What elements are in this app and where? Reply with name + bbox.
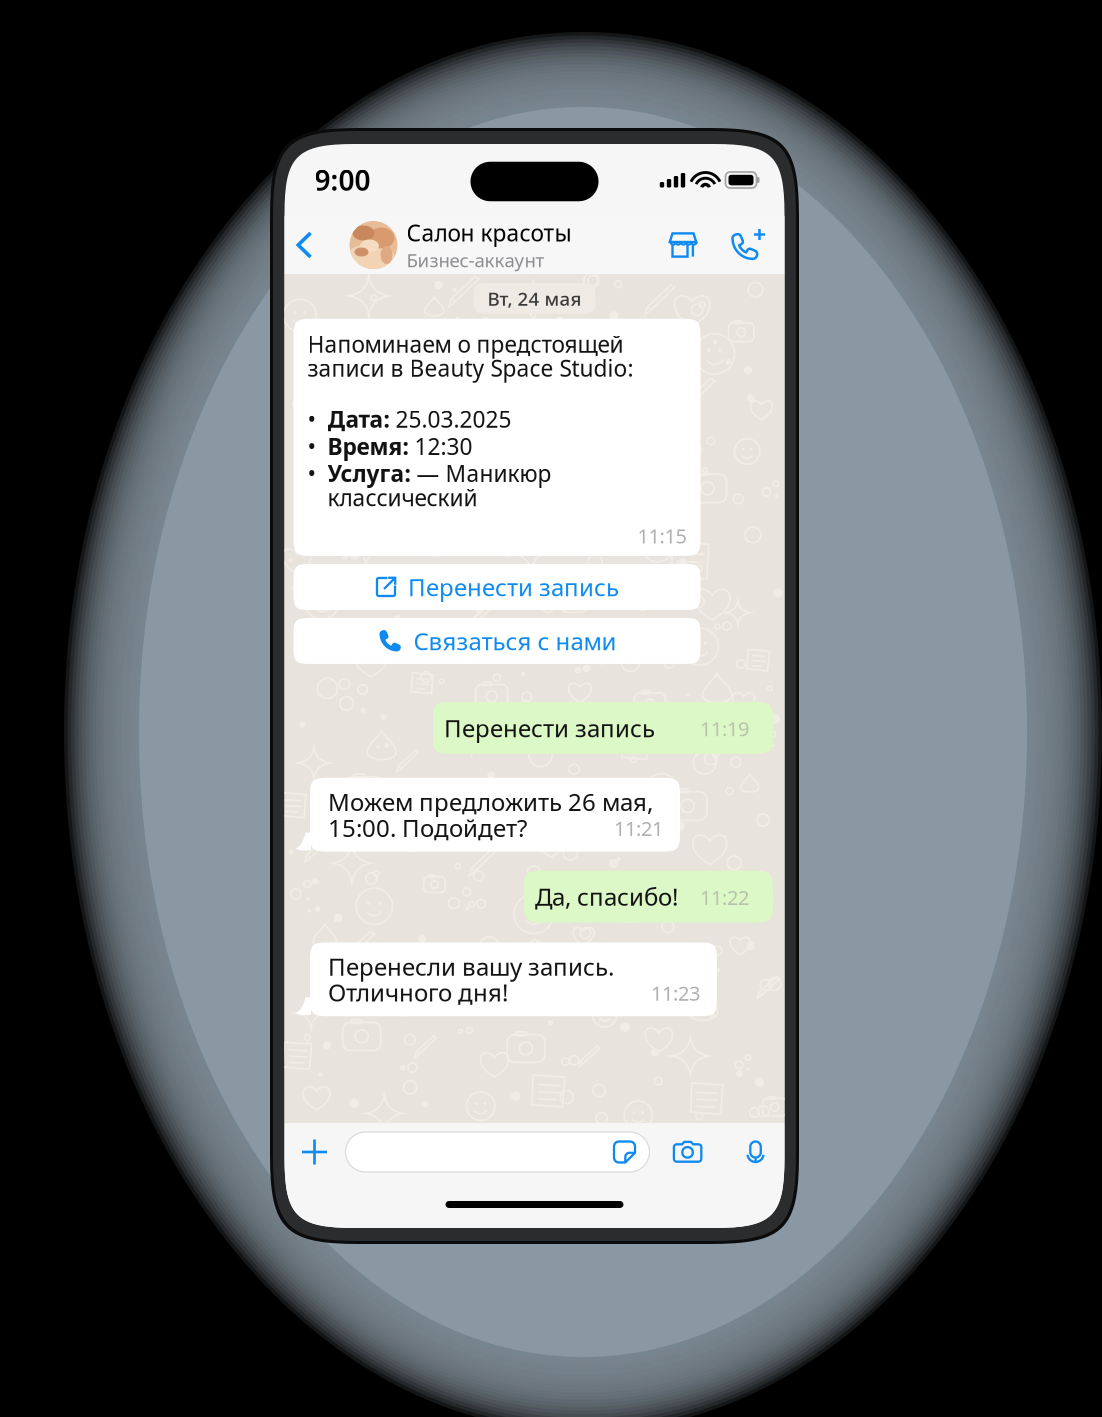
staticText: 15:00. Подойдет? — [328, 812, 527, 844]
staticText: Дата: — [327, 404, 389, 434]
staticText: Услуга: — [327, 458, 410, 488]
staticText: Вт, 24 мая — [487, 286, 581, 311]
button[interactable]: Camera — [649, 1123, 725, 1181]
staticText: Связаться с нами — [413, 625, 616, 657]
staticText: • — [307, 404, 316, 434]
button[interactable]: Салон красоты — [349, 216, 639, 274]
staticText: 11:21 — [614, 815, 663, 842]
staticText: 11:23 — [651, 980, 700, 1006]
button[interactable]: Business profile — [657, 216, 709, 274]
button[interactable]: Attach — [283, 1123, 345, 1181]
staticText: 9:00 — [314, 161, 370, 199]
button[interactable]: Перенести запись — [293, 564, 700, 610]
staticText: записи в Beauty Space Studio: — [307, 353, 633, 383]
staticText: 25.03.2025 — [389, 404, 511, 434]
staticText: 11:15 — [637, 522, 686, 549]
staticText: • — [307, 458, 316, 488]
staticText: Время: — [327, 431, 408, 461]
staticText: Перенести запись — [408, 571, 619, 603]
button[interactable]: Voice message — [725, 1123, 785, 1181]
staticText: Салон красоты — [406, 218, 571, 248]
staticText: 11:22 — [700, 884, 749, 910]
staticText: Бизнес-аккаунт — [406, 248, 544, 272]
staticText: — Маникюр — [410, 458, 551, 488]
staticText: классический — [327, 482, 477, 512]
button[interactable]: Связаться с нами — [293, 618, 700, 664]
staticText: Да, спасибо! — [535, 881, 678, 912]
button[interactable]: Back — [282, 216, 326, 274]
staticText: Можем предложить 26 мая, — [328, 786, 653, 818]
staticText: Напоминаем о предстоящей — [307, 329, 623, 359]
staticText: Перенесли вашу запись. — [328, 950, 614, 982]
staticText: 12:30 — [408, 431, 472, 461]
button[interactable]: New call — [721, 216, 773, 274]
staticText: Перенести запись — [444, 712, 655, 744]
staticText: Отличного дня! — [328, 976, 508, 1008]
staticText: • — [307, 431, 316, 461]
staticText: 11:19 — [700, 715, 749, 742]
